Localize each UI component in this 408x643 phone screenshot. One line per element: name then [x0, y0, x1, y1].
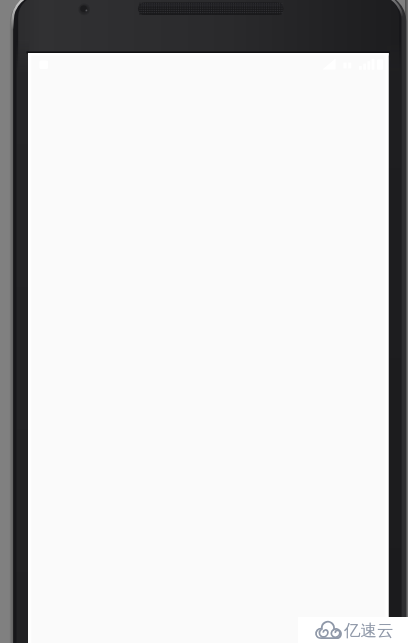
staticText: 亿速云 — [344, 620, 394, 641]
button[interactable]: 亿速云 — [312, 618, 396, 642]
